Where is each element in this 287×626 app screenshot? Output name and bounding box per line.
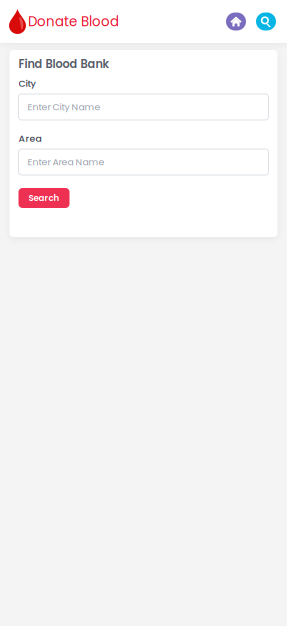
button[interactable]: Search	[18, 188, 69, 208]
staticText: Donate Blood	[28, 12, 119, 31]
staticText: Enter City Name	[27, 100, 100, 113]
staticText: Find Blood Bank	[18, 56, 109, 72]
button[interactable]: Home	[226, 12, 246, 30]
button[interactable]: Search	[256, 12, 276, 30]
staticText: Enter Area Name	[27, 155, 104, 169]
staticText: Search	[28, 192, 59, 204]
staticText: City	[18, 77, 35, 90]
staticText: Area	[18, 132, 41, 145]
